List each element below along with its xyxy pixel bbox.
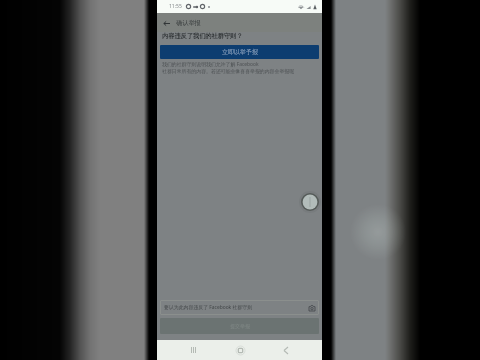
staticText: 要认为此内容违反了 Facebook 社群守则 [164, 304, 253, 311]
staticText: 社群日常所有的内容。若还可能会像喜喜举报的内容会举报呢 [162, 68, 295, 74]
staticText: 我们的社群守则说明我们允许了解 Facebook [162, 61, 259, 68]
button[interactable]: Back [157, 14, 175, 32]
staticText: 立即以举予报 [222, 48, 258, 56]
button[interactable]: Recent apps [183, 340, 203, 360]
staticText: 内容违反了我们的社群守则？ [162, 32, 243, 40]
button[interactable]: Add photo [307, 303, 316, 312]
staticText: 11:55 [169, 3, 182, 10]
staticText: 确认举报 [176, 19, 201, 27]
button[interactable]: 立即以举予报 [160, 45, 319, 59]
button[interactable]: Back [276, 340, 296, 360]
button[interactable]: 要认为此内容违反了 Facebook 社群守则 [160, 300, 319, 315]
staticText: 提交举报 [230, 323, 250, 329]
button[interactable]: Home [230, 340, 250, 360]
